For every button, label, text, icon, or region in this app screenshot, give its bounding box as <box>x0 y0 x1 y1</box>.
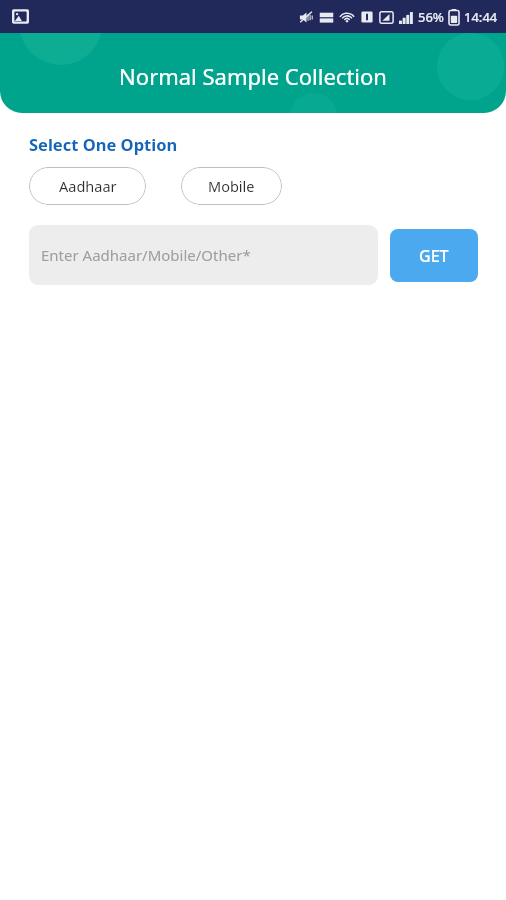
staticText: 56% <box>418 8 444 26</box>
staticText: Enter Aadhaar/Mobile/Other* <box>41 245 251 265</box>
staticText: Aadhaar <box>59 176 117 196</box>
staticText: Select One Option <box>29 133 178 155</box>
button[interactable]: Aadhaar <box>29 167 146 205</box>
button[interactable]: Enter Aadhaar/Mobile/Other* <box>29 225 378 285</box>
staticText: Mobile <box>208 176 255 196</box>
button[interactable]: GET <box>390 229 478 282</box>
staticText: GET <box>419 245 449 267</box>
button[interactable]: Mobile <box>181 167 282 205</box>
staticText: 14:44 <box>464 8 498 26</box>
staticText: Normal Sample Collection <box>119 61 387 91</box>
